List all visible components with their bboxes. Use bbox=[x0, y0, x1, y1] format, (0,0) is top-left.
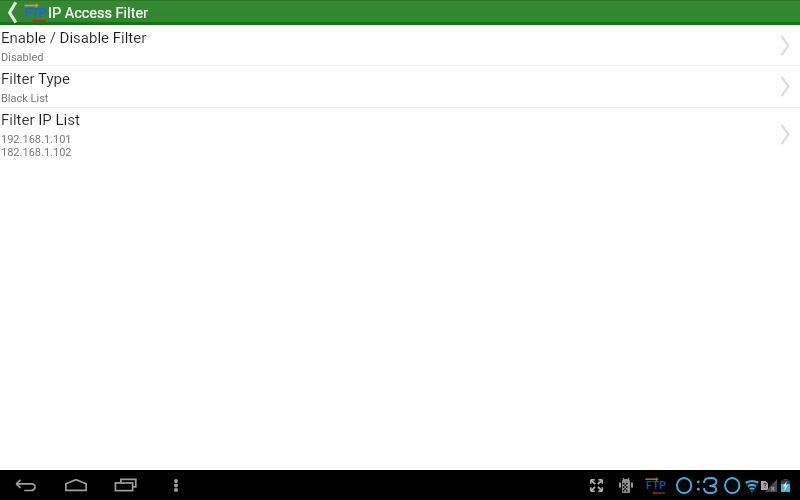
staticText: Disabled bbox=[1, 51, 44, 64]
button[interactable]: Filter Type bbox=[0, 66, 800, 107]
button[interactable]: Back bbox=[0, 470, 51, 500]
staticText: Filter Type bbox=[1, 70, 70, 88]
button[interactable]: Enable / Disable Filter bbox=[0, 25, 800, 65]
button[interactable]: More options bbox=[151, 470, 200, 500]
staticText: ? bbox=[763, 481, 767, 490]
staticText: Filter IP List bbox=[1, 111, 80, 129]
button[interactable]: Clock 0:30 bbox=[676, 470, 740, 500]
staticText: Enable / Disable Filter bbox=[1, 29, 147, 47]
button[interactable]: Filter IP List bbox=[0, 108, 800, 160]
staticText: FTP bbox=[646, 479, 667, 492]
staticText: IP Access Filter bbox=[48, 5, 148, 22]
staticText: 192.168.1.101 bbox=[1, 133, 72, 146]
button[interactable]: Recent apps bbox=[100, 470, 151, 500]
button[interactable]: Fullscreen bbox=[590, 470, 603, 500]
button[interactable]: Navigate up bbox=[0, 0, 48, 25]
button[interactable]: Clock 0:30 bbox=[676, 477, 740, 494]
staticText: 182.168.1.102 bbox=[1, 146, 72, 159]
staticText: FTP bbox=[25, 6, 47, 20]
staticText: Black List bbox=[1, 92, 49, 105]
button[interactable]: Home bbox=[51, 470, 100, 500]
